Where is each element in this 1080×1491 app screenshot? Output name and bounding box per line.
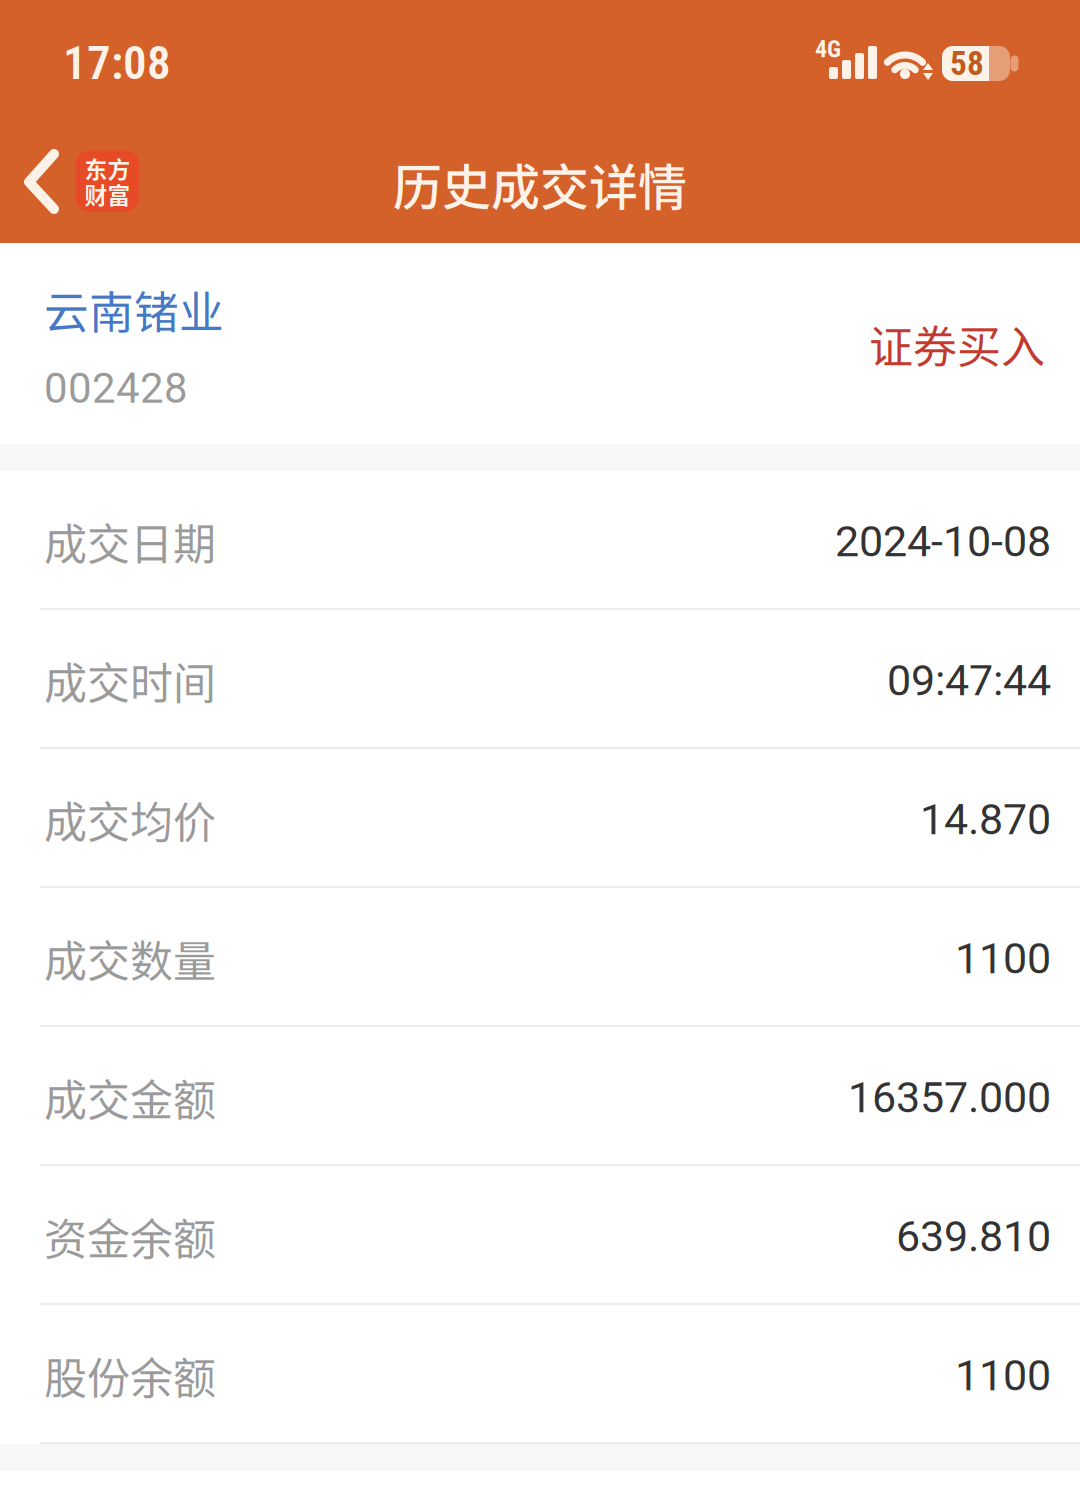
staticText: 14.870 bbox=[920, 794, 1051, 845]
staticText: 09:47:44 bbox=[887, 655, 1051, 706]
staticText: 证券买入 bbox=[869, 312, 1045, 376]
staticText: 成交数量 bbox=[44, 927, 216, 990]
staticText: 17:08 bbox=[63, 35, 171, 91]
staticText: 历史成交详情 bbox=[393, 148, 687, 219]
staticText: 2024-10-08 bbox=[835, 516, 1051, 567]
staticText: 云南锗业 bbox=[44, 277, 224, 342]
staticText: 资金余额 bbox=[44, 1205, 216, 1268]
staticText: 成交均价 bbox=[44, 788, 216, 851]
staticText: 东方 bbox=[84, 152, 130, 184]
button[interactable]: Back bbox=[14, 144, 70, 218]
staticText: 成交金额 bbox=[44, 1066, 216, 1129]
staticText: 成交时间 bbox=[44, 649, 216, 712]
staticText: 股份余额 bbox=[44, 1344, 216, 1407]
button[interactable]: 云南锗业 002428 bbox=[0, 243, 224, 413]
staticText: 成交日期 bbox=[44, 510, 216, 573]
staticText: 4G bbox=[815, 35, 841, 63]
staticText: 1100 bbox=[955, 1350, 1051, 1401]
staticText: 002428 bbox=[44, 364, 188, 413]
staticText: 16357.000 bbox=[848, 1072, 1051, 1123]
staticText: 财富 bbox=[84, 178, 130, 210]
staticText: 58 bbox=[950, 44, 984, 83]
staticText: 639.810 bbox=[896, 1211, 1051, 1262]
staticText: 1100 bbox=[955, 933, 1051, 984]
